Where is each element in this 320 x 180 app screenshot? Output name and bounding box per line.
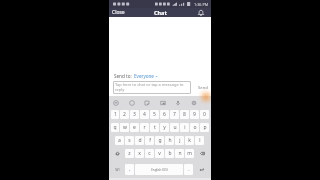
button[interactable]: w [120, 123, 129, 132]
button[interactable]: d [135, 136, 144, 145]
staticText: t [154, 124, 156, 131]
button[interactable]: h [165, 136, 174, 145]
button[interactable]: Backspace [195, 149, 209, 158]
staticText: s [128, 137, 131, 144]
button[interactable]: o [190, 123, 199, 132]
button[interactable]: 6 [160, 110, 169, 119]
button[interactable]: 2 [120, 110, 129, 119]
staticText: . [188, 166, 190, 173]
staticText: 0 [203, 111, 206, 118]
staticText: p [203, 124, 207, 131]
button[interactable]: Stickers [142, 98, 151, 107]
staticText: y [163, 124, 166, 131]
button[interactable]: Everyone [134, 72, 158, 80]
button[interactable]: Enter [194, 164, 209, 175]
staticText: i [184, 124, 186, 131]
button[interactable]: English (US) [135, 164, 183, 175]
staticText: Everyone [134, 73, 154, 79]
staticText: !#1 [115, 167, 121, 172]
staticText: j [179, 137, 181, 144]
button[interactable]: j [175, 136, 184, 145]
button[interactable]: q [111, 123, 119, 132]
staticText: b [168, 150, 172, 157]
staticText: Chat [154, 9, 167, 16]
button[interactable]: m [185, 149, 194, 158]
button[interactable]: x [135, 149, 144, 158]
button[interactable]: Tap here to chat or tap a message to rep… [115, 82, 189, 94]
staticText: m [187, 150, 192, 157]
button[interactable]: l [195, 136, 204, 145]
staticText: 8 [183, 111, 186, 118]
button[interactable]: Clipboard [158, 98, 167, 107]
staticText: Close [112, 9, 125, 16]
button[interactable]: k [185, 136, 194, 145]
staticText: k [188, 137, 191, 144]
button[interactable]: Settings [189, 98, 198, 107]
button[interactable]: Voice input [173, 98, 182, 107]
button[interactable]: v [155, 149, 164, 158]
button[interactable]: 0 [200, 110, 209, 119]
staticText: 2 [123, 111, 126, 118]
button[interactable]: t [150, 123, 159, 132]
staticText: l [199, 137, 201, 144]
staticText: 3 [133, 111, 136, 118]
staticText: 6 [163, 111, 166, 118]
staticText: , [129, 166, 131, 173]
button[interactable]: g [155, 136, 164, 145]
button[interactable]: 8 [180, 110, 189, 119]
button[interactable]: a [115, 136, 124, 145]
button[interactable]: i [180, 123, 189, 132]
button[interactable]: p [200, 123, 209, 132]
staticText: w [123, 124, 127, 131]
staticText: e [133, 124, 136, 131]
button[interactable]: Shift [111, 149, 124, 158]
button[interactable]: r [140, 123, 149, 132]
staticText: u [173, 124, 177, 131]
button[interactable]: z [125, 149, 134, 158]
button[interactable]: 4 [140, 110, 149, 119]
button[interactable]: 5 [150, 110, 159, 119]
staticText: z [128, 150, 131, 157]
button[interactable]: Notifications [196, 8, 206, 17]
staticText: o [193, 124, 197, 131]
staticText: Send to: [114, 73, 132, 79]
staticText: 1 [114, 111, 117, 118]
staticText: Tap here to chat or tap a message to rep… [115, 82, 189, 92]
button[interactable]: Emoji [111, 98, 120, 107]
button[interactable]: Search [127, 98, 136, 107]
staticText: q [113, 124, 117, 131]
staticText: a [118, 137, 121, 144]
button[interactable]: e [130, 123, 139, 132]
staticText: 5 [153, 111, 156, 118]
staticText: f [149, 137, 151, 144]
staticText: r [143, 124, 146, 131]
staticText: n [178, 150, 182, 157]
staticText: v [158, 150, 161, 157]
staticText: h [168, 137, 172, 144]
button[interactable]: !#1 [111, 164, 124, 175]
button[interactable]: f [145, 136, 154, 145]
button[interactable]: n [175, 149, 184, 158]
button[interactable]: b [165, 149, 174, 158]
button[interactable]: u [170, 123, 179, 132]
staticText: g [158, 137, 162, 144]
staticText: Send [198, 85, 208, 91]
staticText: 1:36 PM [194, 2, 209, 7]
staticText: English (US) [151, 168, 168, 172]
button[interactable]: c [145, 149, 154, 158]
button[interactable]: 7 [170, 110, 179, 119]
button[interactable]: , [125, 164, 134, 175]
staticText: 4 [143, 111, 146, 118]
staticText: c [148, 150, 151, 157]
button[interactable]: Close [111, 9, 126, 16]
staticText: x [138, 150, 141, 157]
staticText: 9 [193, 111, 196, 118]
button[interactable]: . [184, 164, 193, 175]
button[interactable]: s [125, 136, 134, 145]
button[interactable]: 1 [111, 110, 119, 119]
button[interactable]: 3 [130, 110, 139, 119]
button[interactable]: 9 [190, 110, 199, 119]
button[interactable]: Send [197, 83, 209, 93]
button[interactable]: y [160, 123, 169, 132]
staticText: 7 [173, 111, 176, 118]
